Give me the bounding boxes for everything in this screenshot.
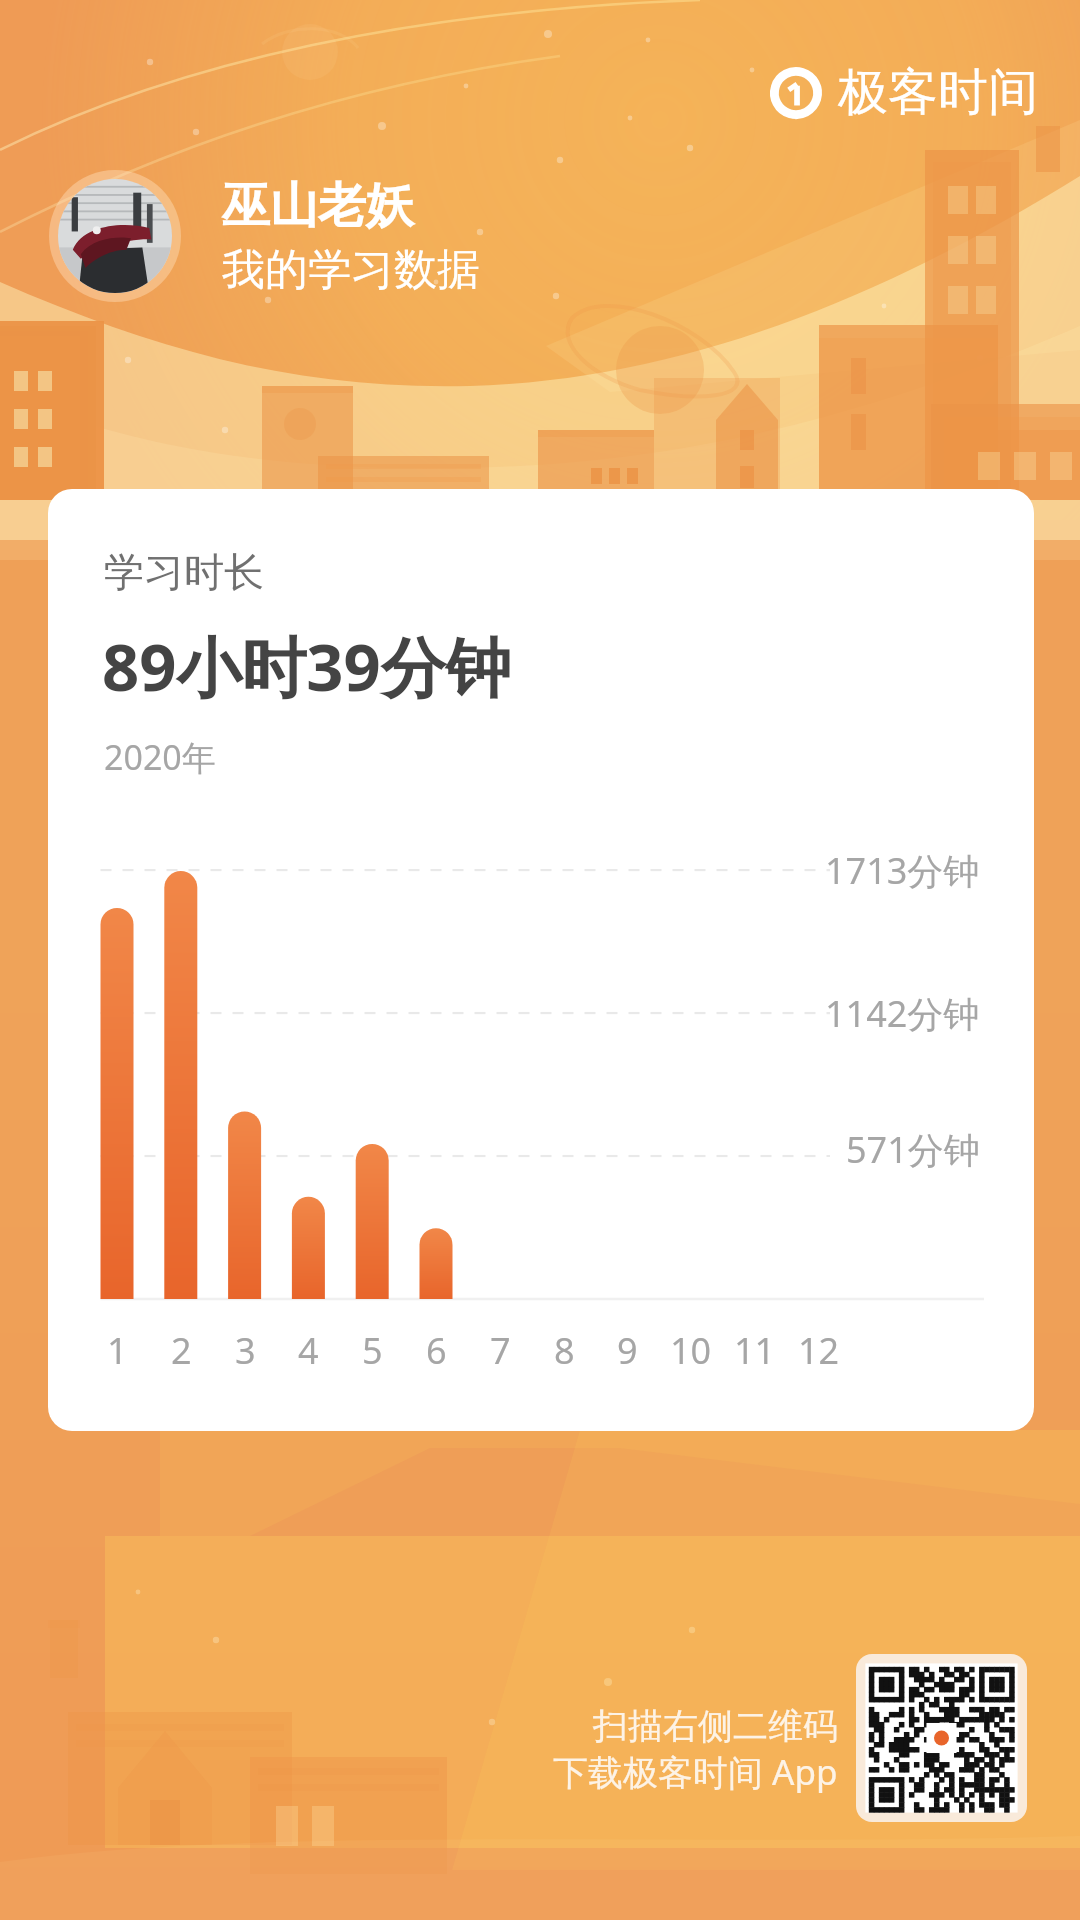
staticText: 8 xyxy=(554,1326,575,1375)
staticText: 3 xyxy=(235,1326,256,1375)
staticText: 扫描右侧二维码 xyxy=(593,1704,838,1748)
staticText: 6 xyxy=(426,1326,447,1375)
staticText: 1142分钟 xyxy=(825,989,980,1038)
staticText: 9 xyxy=(617,1326,638,1375)
staticText: 10 xyxy=(670,1326,712,1375)
button[interactable]: 下载二维码 xyxy=(856,1654,1027,1822)
staticText: 1 xyxy=(107,1326,128,1375)
staticText: 12 xyxy=(798,1326,840,1375)
staticText: 极客时间 xyxy=(838,61,1038,124)
staticText: 学习时长 xyxy=(104,547,264,597)
staticText: 5 xyxy=(362,1326,383,1375)
staticText: 巫山老妖 xyxy=(222,176,414,236)
staticText: 2020年 xyxy=(104,734,216,780)
button[interactable]: 巫山老妖 xyxy=(49,170,480,302)
button[interactable]: 极客时间 xyxy=(770,61,1038,124)
staticText: 7 xyxy=(490,1326,511,1375)
staticText: 2 xyxy=(171,1326,192,1375)
staticText: 89小时39分钟 xyxy=(102,622,511,711)
staticText: 我的学习数据 xyxy=(222,243,480,297)
staticText: 4 xyxy=(298,1326,319,1375)
staticText: 11 xyxy=(734,1326,776,1375)
staticText: 571分钟 xyxy=(846,1125,980,1174)
staticText: 1713分钟 xyxy=(825,846,980,895)
staticText: 下载极客时间 App xyxy=(553,1748,838,1796)
